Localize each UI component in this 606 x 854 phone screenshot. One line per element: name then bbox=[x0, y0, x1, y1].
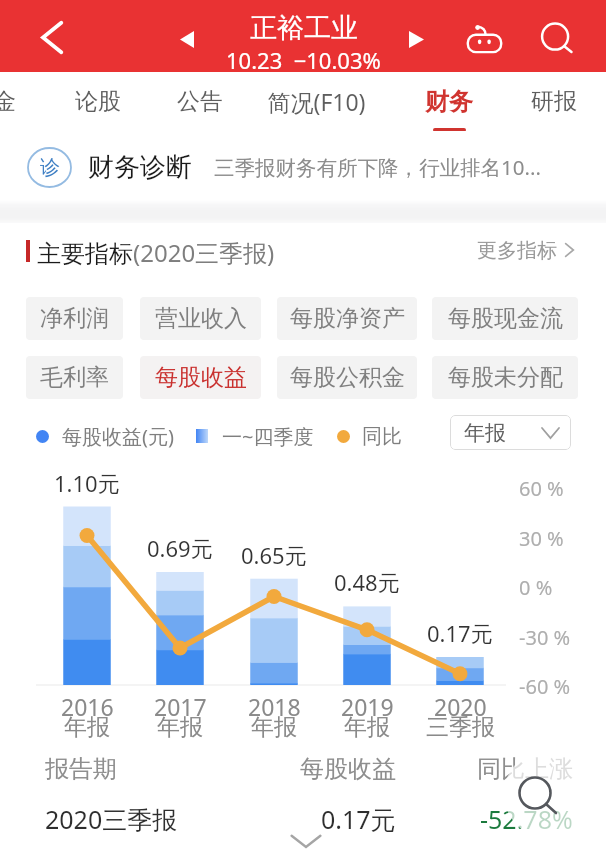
button[interactable]: 每股收益 bbox=[140, 356, 261, 399]
staticText: 2016 bbox=[61, 691, 114, 722]
staticText: 0.17元 bbox=[321, 802, 396, 836]
button[interactable]: Back bbox=[20, 13, 66, 59]
button[interactable]: 净利润 bbox=[26, 297, 123, 340]
staticText: 0 % bbox=[519, 574, 553, 601]
staticText: 正裕工业 bbox=[250, 11, 358, 45]
button[interactable]: 每股净资产 bbox=[277, 297, 417, 340]
button[interactable]: 每股未分配 bbox=[432, 356, 578, 399]
button[interactable]: Search bbox=[504, 750, 592, 838]
staticText: 每股收益 bbox=[300, 754, 396, 784]
staticText: -52.78% bbox=[480, 802, 573, 836]
staticText: 毛利率 bbox=[40, 363, 109, 392]
staticText: 2019 bbox=[341, 691, 394, 722]
staticText: 年报 bbox=[344, 713, 390, 742]
staticText: 财务诊断 bbox=[88, 151, 192, 184]
button[interactable]: 年报 bbox=[450, 415, 571, 450]
staticText: 营业收入 bbox=[155, 304, 247, 333]
staticText: -60 % bbox=[519, 673, 571, 700]
staticText: 每股公积金 bbox=[290, 363, 405, 392]
staticText: 一~四季度 bbox=[222, 423, 314, 450]
staticText: 研报 bbox=[531, 87, 577, 116]
staticText: 每股现金流 bbox=[448, 304, 563, 333]
button[interactable]: Next stock bbox=[397, 20, 435, 58]
staticText: 60 % bbox=[519, 475, 564, 502]
staticText: 30 % bbox=[519, 525, 564, 552]
staticText: 0.17元 bbox=[427, 618, 493, 648]
button[interactable]: 营业收入 bbox=[140, 297, 261, 340]
staticText: 同比 bbox=[362, 424, 402, 449]
staticText: 诊 bbox=[40, 155, 60, 180]
staticText: 2017 bbox=[154, 691, 207, 722]
staticText: 报告期 bbox=[45, 754, 117, 784]
button[interactable]: 每股现金流 bbox=[432, 297, 578, 340]
staticText: 公告 bbox=[177, 87, 223, 116]
button[interactable]: 简况(F10) bbox=[264, 72, 368, 131]
staticText: 年报 bbox=[251, 713, 297, 742]
button[interactable]: 财务 bbox=[397, 72, 501, 131]
staticText: 每股收益(元) bbox=[62, 423, 174, 450]
staticText: 三季报 bbox=[426, 713, 495, 742]
staticText: 三季报财务有所下降，行业排名10... bbox=[214, 153, 541, 181]
staticText: 金 bbox=[0, 87, 16, 116]
button[interactable]: 毛利率 bbox=[26, 356, 123, 399]
button[interactable]: Search bbox=[532, 12, 580, 60]
staticText: 10.23 −10.03% bbox=[226, 45, 381, 75]
staticText: -30 % bbox=[519, 624, 571, 651]
staticText: 0.48元 bbox=[334, 567, 400, 597]
staticText: 每股净资产 bbox=[290, 304, 405, 333]
staticText: 每股未分配 bbox=[448, 363, 563, 392]
button[interactable]: 公告 bbox=[148, 72, 252, 131]
staticText: (2020三季报) bbox=[133, 236, 275, 269]
button[interactable]: AI assistant bbox=[460, 10, 508, 58]
staticText: 更多指标 bbox=[477, 238, 557, 263]
staticText: 0.65元 bbox=[241, 540, 307, 570]
button[interactable]: 金 bbox=[0, 72, 56, 131]
staticText: 0.69元 bbox=[147, 533, 213, 563]
staticText: 主要指标 bbox=[37, 239, 133, 269]
button[interactable]: Expand bbox=[288, 833, 324, 851]
button[interactable]: 研报 bbox=[502, 72, 606, 131]
staticText: 2020 bbox=[434, 691, 487, 722]
staticText: 同比上涨 bbox=[477, 754, 573, 784]
staticText: 每股收益 bbox=[155, 363, 247, 392]
staticText: 年报 bbox=[157, 713, 203, 742]
staticText: 净利润 bbox=[40, 304, 109, 333]
button[interactable]: 每股公积金 bbox=[277, 356, 417, 399]
staticText: 2020三季报 bbox=[45, 802, 178, 836]
staticText: 财务 bbox=[425, 87, 473, 117]
button[interactable]: 更多指标 bbox=[477, 236, 575, 264]
button[interactable]: 论股 bbox=[46, 72, 150, 131]
staticText: 1.10元 bbox=[54, 468, 120, 498]
button[interactable]: 诊 bbox=[0, 131, 606, 203]
staticText: 年报 bbox=[64, 713, 110, 742]
staticText: 2018 bbox=[248, 691, 301, 722]
staticText: 简况(F10) bbox=[267, 86, 366, 117]
staticText: 年报 bbox=[464, 420, 506, 446]
button[interactable]: Previous stock bbox=[168, 20, 206, 58]
staticText: 论股 bbox=[75, 87, 121, 116]
